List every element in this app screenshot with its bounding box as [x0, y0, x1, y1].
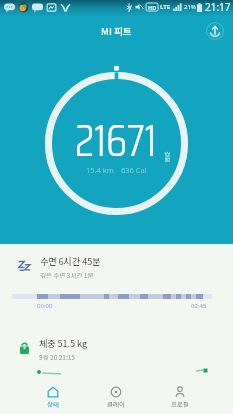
- staticText: 21%: [184, 3, 196, 11]
- button[interactable]: 프로필: [148, 378, 212, 414]
- button[interactable]: 체중 51.5 kg: [0, 325, 233, 414]
- staticText: 체중 51.5 kg: [39, 337, 87, 350]
- staticText: 21:17: [205, 0, 231, 14]
- button[interactable]: 상태: [21, 378, 84, 414]
- staticText: 클레이: [107, 399, 125, 408]
- staticText: 00:00: [37, 302, 53, 310]
- button[interactable]: 수면 6시간 45분: [0, 244, 233, 325]
- staticText: 깊은 수면 3시간 1분: [40, 270, 94, 279]
- button[interactable]: Sync: [204, 20, 226, 42]
- staticText: 수면 6시간 45분: [40, 255, 101, 268]
- staticText: 9월 20 21:15: [39, 352, 75, 361]
- staticText: HD: [148, 4, 157, 11]
- button[interactable]: Steps today: [45, 72, 188, 215]
- staticText: 21671: [75, 106, 157, 175]
- staticText: 프로필: [171, 399, 189, 408]
- staticText: LTE: [160, 3, 171, 11]
- button[interactable]: 클레이: [84, 378, 148, 414]
- staticText: 걸음: [158, 155, 167, 175]
- staticText: 상태: [47, 399, 59, 408]
- staticText: MI 피트: [101, 24, 132, 38]
- staticText: 15.4 km: [86, 165, 114, 175]
- staticText: 02:45: [191, 302, 207, 310]
- staticText: 636 Cal: [121, 165, 147, 175]
